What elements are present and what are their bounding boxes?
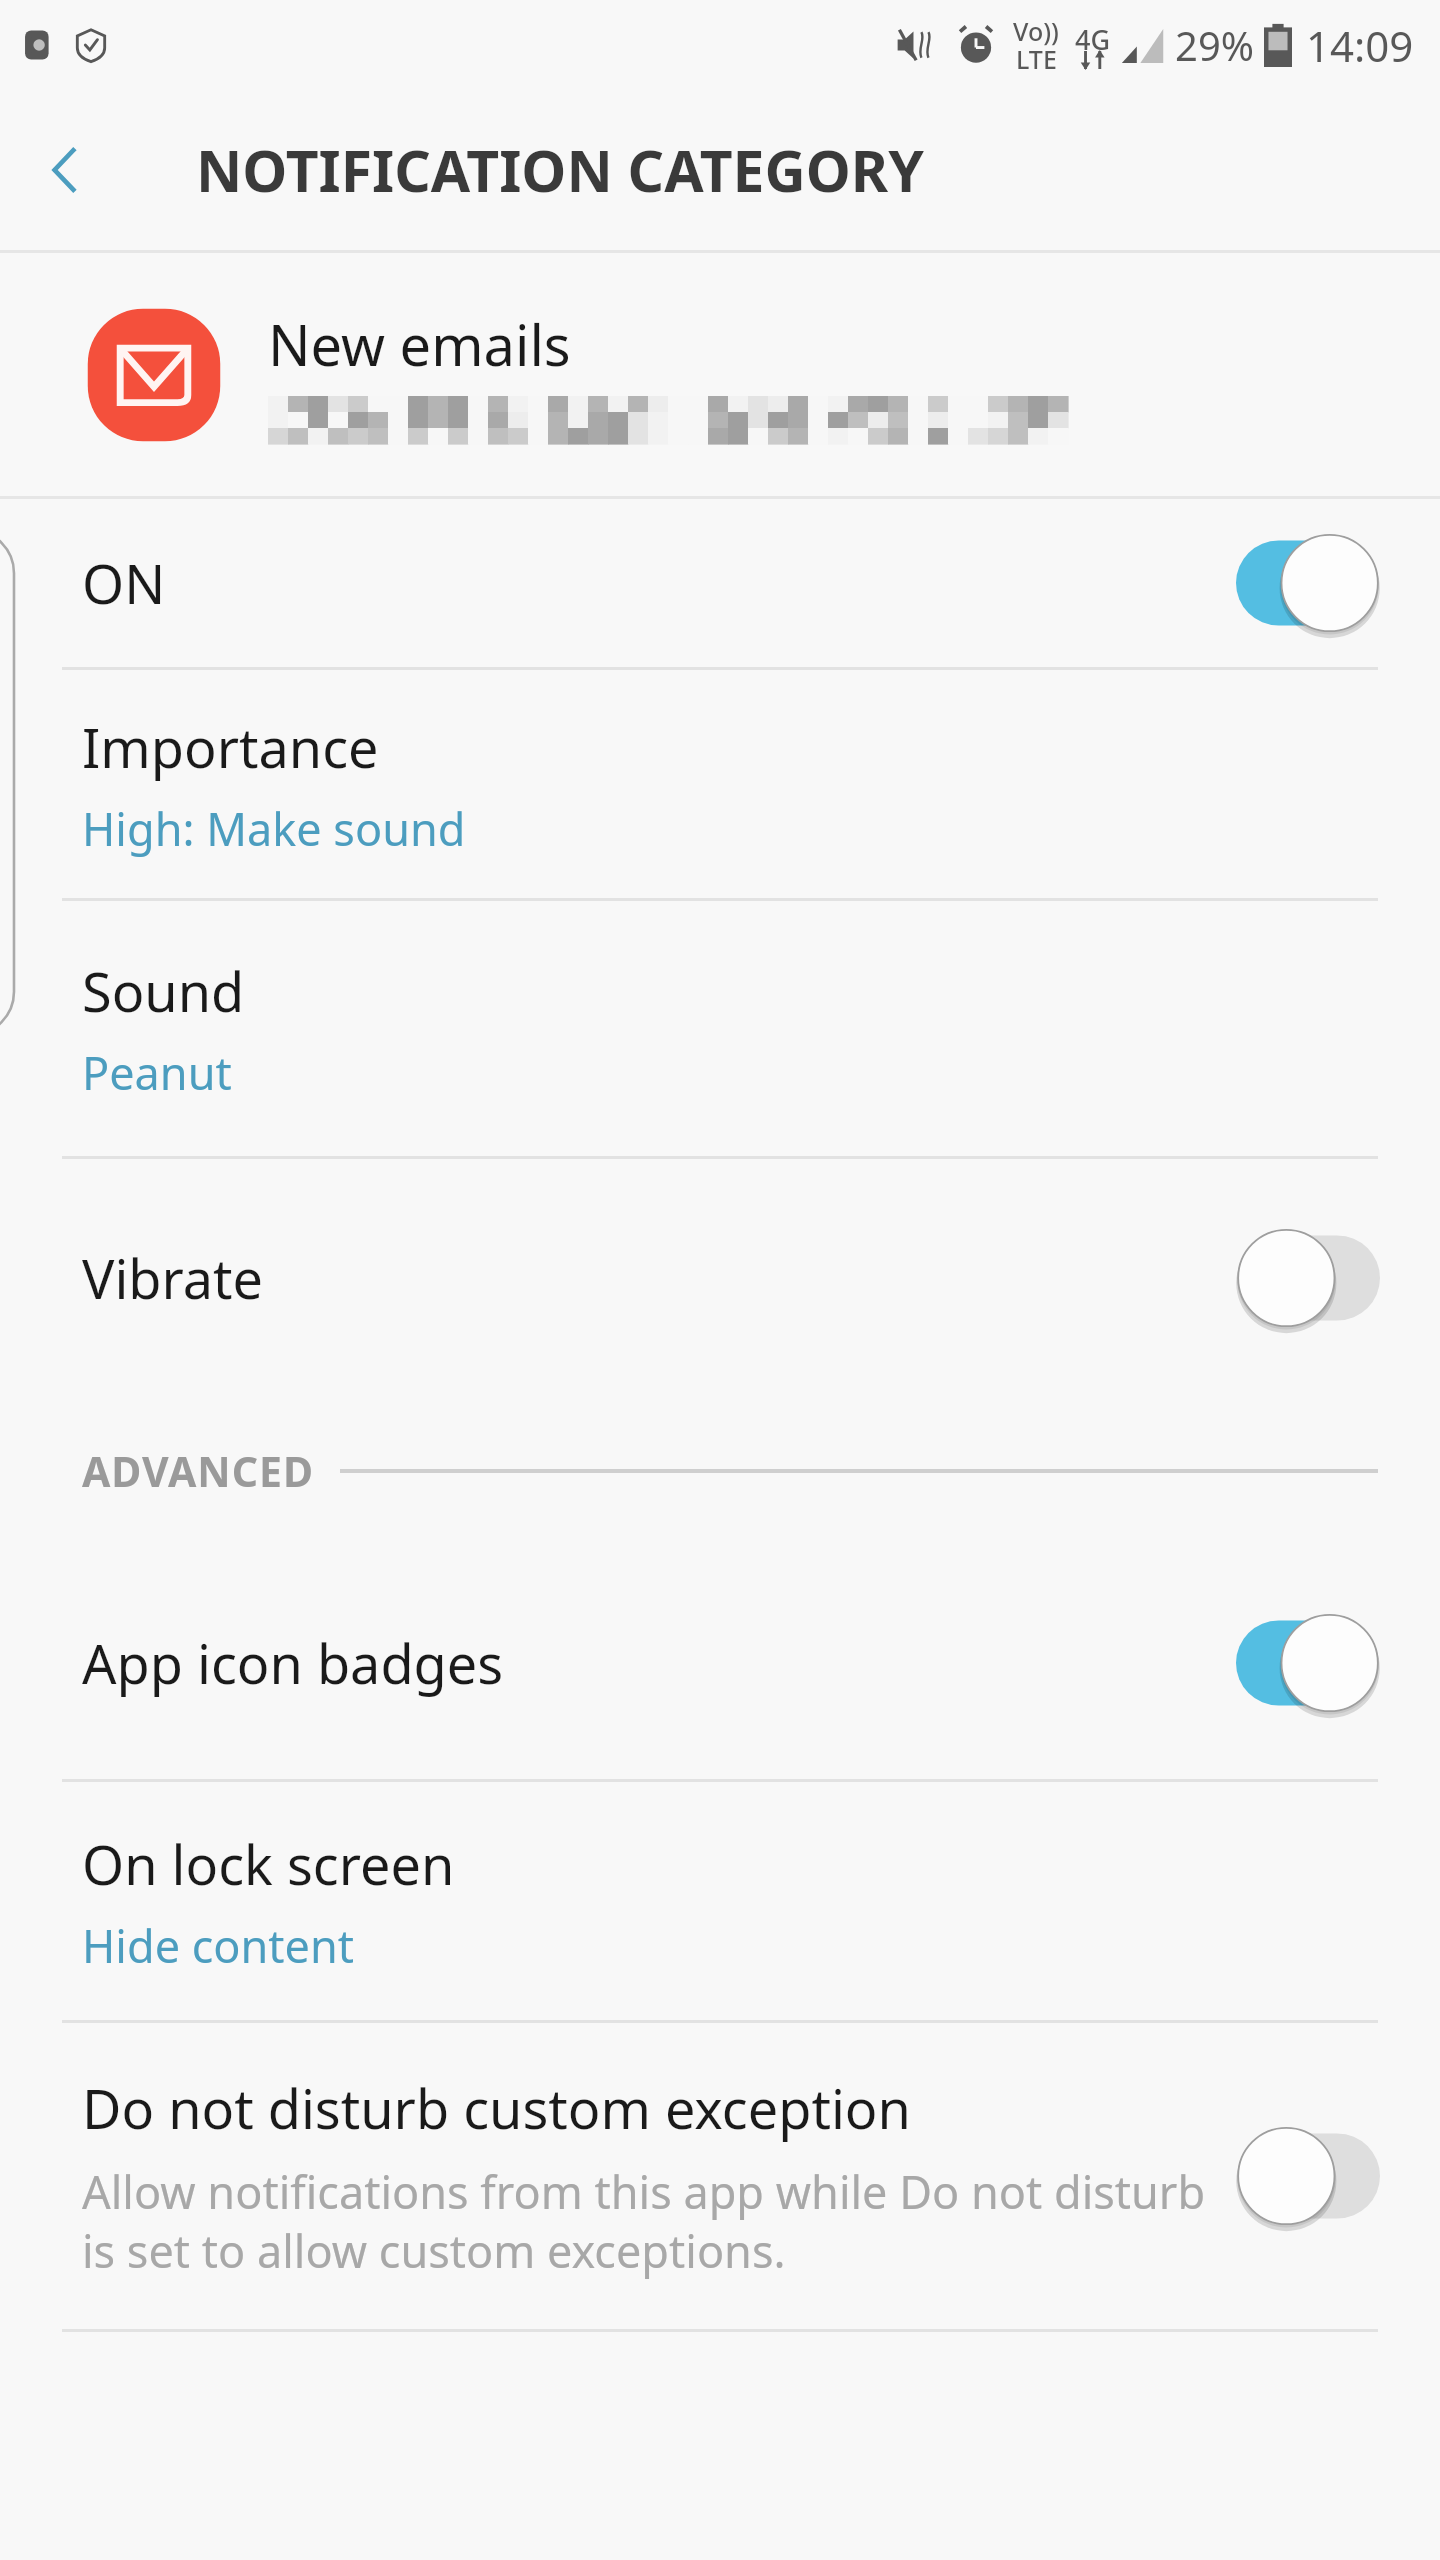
staticText: LTE — [1016, 42, 1057, 76]
staticText: ON — [82, 546, 166, 620]
button[interactable]: Do not disturb custom exception — [0, 2023, 1440, 2329]
staticText: 14:09 — [1306, 17, 1414, 74]
button[interactable]: On lock screen — [0, 1782, 1440, 2020]
staticText: Peanut — [82, 1042, 232, 1103]
staticText: ADVANCED — [82, 1443, 314, 1499]
button[interactable]: New emails — [0, 253, 1440, 496]
staticText: On lock screen — [82, 1827, 455, 1901]
staticText: Vibrate — [82, 1241, 264, 1315]
staticText: Hide content — [82, 1915, 355, 1976]
button[interactable]: Back — [0, 105, 130, 235]
button[interactable]: Toggle on — [1236, 1607, 1380, 1719]
button[interactable]: Toggle on — [1236, 527, 1380, 639]
button[interactable]: Importance — [0, 670, 1440, 898]
staticText: Allow notifications from this app while … — [82, 2161, 1206, 2281]
button[interactable]: Vibrate — [0, 1159, 1440, 1396]
staticText: New emails — [268, 306, 571, 382]
staticText: Do not disturb custom exception — [82, 2071, 911, 2145]
staticText: Importance — [82, 710, 379, 784]
staticText: Sound — [82, 954, 245, 1028]
staticText: 4G — [1075, 21, 1111, 58]
button[interactable]: ON — [0, 499, 1440, 667]
staticText: App icon badges — [82, 1626, 504, 1700]
button[interactable]: Toggle off — [1236, 2120, 1380, 2232]
button[interactable]: Toggle off — [1236, 1222, 1380, 1334]
staticText: High: Make sound — [82, 798, 466, 859]
button[interactable]: Sound — [0, 901, 1440, 1156]
staticText: NOTIFICATION CATEGORY — [196, 131, 924, 209]
staticText: Vo)) — [1013, 14, 1059, 48]
staticText: 29% — [1175, 18, 1254, 72]
button[interactable]: App icon badges — [0, 1546, 1440, 1779]
